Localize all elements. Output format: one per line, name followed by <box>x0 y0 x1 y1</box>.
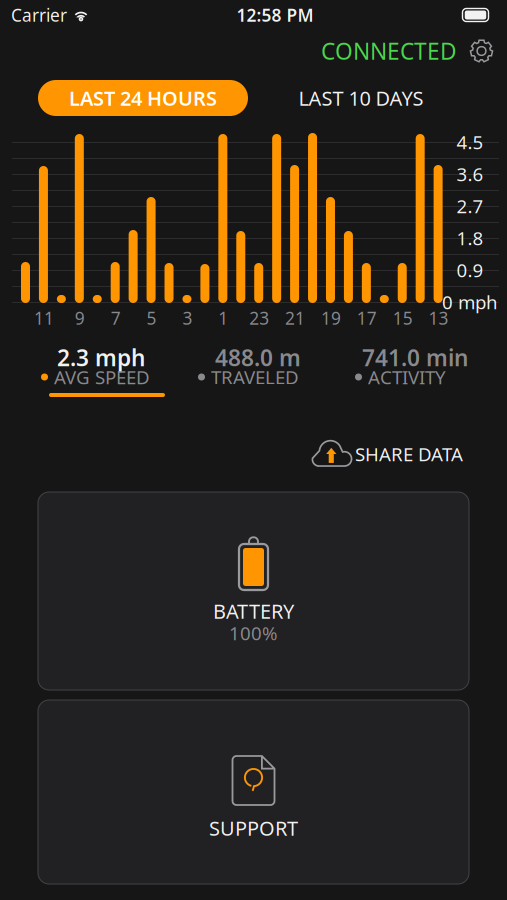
staticText: SHARE DATA <box>355 442 463 466</box>
staticText: CONNECTED <box>321 36 457 66</box>
staticText: 21 <box>285 306 305 329</box>
staticText: 3 <box>182 306 192 329</box>
staticText: TRAVELED <box>211 365 299 389</box>
staticText: 7 <box>111 306 121 329</box>
staticText: 741.0 min <box>362 342 468 372</box>
staticText: 0 mph <box>442 290 498 314</box>
button[interactable]: 741.0 min <box>355 347 479 397</box>
staticText: ACTIVITY <box>368 365 446 389</box>
staticText: LAST 10 DAYS <box>298 85 423 111</box>
button[interactable]: 2.3 mph <box>41 347 165 397</box>
staticText: 0.9 <box>456 258 483 282</box>
button[interactable]: SUPPORT <box>38 700 469 884</box>
staticText: SUPPORT <box>209 815 298 841</box>
staticText: 15 <box>393 306 413 329</box>
staticText: 23 <box>249 306 269 329</box>
staticText: 1 <box>218 306 228 329</box>
button[interactable]: 488.0 m <box>198 347 322 397</box>
staticText: Carrier <box>11 3 67 26</box>
staticText: 9 <box>75 306 85 329</box>
staticText: BATTERY <box>213 598 294 624</box>
button[interactable]: Settings <box>457 35 493 66</box>
staticText: AVG SPEED <box>54 365 150 389</box>
staticText: 12:58 PM <box>236 3 313 26</box>
staticText: 2.3 mph <box>57 342 145 372</box>
staticText: 3.6 <box>456 162 483 186</box>
button[interactable]: LAST 24 HOURS <box>38 80 248 116</box>
staticText: LAST 24 HOURS <box>69 85 217 111</box>
staticText: 17 <box>357 306 377 329</box>
staticText: 11 <box>34 306 54 329</box>
staticText: 2.7 <box>456 194 483 218</box>
staticText: 5 <box>147 306 157 329</box>
button[interactable]: BATTERY <box>38 492 469 690</box>
staticText: 100% <box>229 621 278 645</box>
button[interactable]: LAST 10 DAYS <box>248 80 439 116</box>
staticText: 488.0 m <box>215 342 301 372</box>
button[interactable]: SHARE DATA <box>312 439 463 469</box>
staticText: 19 <box>321 306 341 329</box>
staticText: 13 <box>429 306 449 329</box>
staticText: 4.5 <box>456 130 483 154</box>
staticText: 1.8 <box>456 226 483 250</box>
